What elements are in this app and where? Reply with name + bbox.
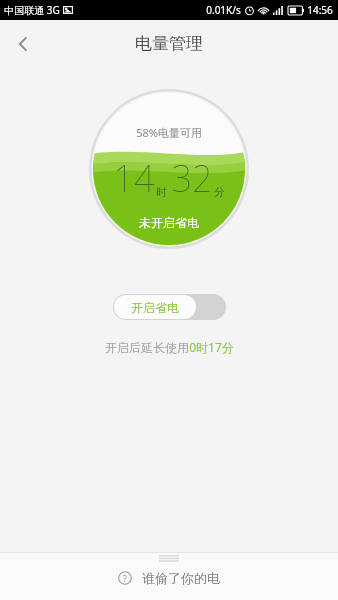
staticText: 开启省电 [131,300,179,315]
staticText: 14 [113,154,155,203]
button[interactable]: Back [0,21,46,67]
staticText: 0.01K/s [206,3,241,17]
staticText: ? [123,572,127,584]
button[interactable]: 开启省电 [113,294,226,320]
staticText: 32 [171,154,213,203]
staticText: 电量管理 [135,33,203,54]
staticText: 0时17分 [189,339,234,355]
staticText: 未开启省电 [139,215,199,230]
staticText: 14:56 [307,3,333,17]
staticText: 58%电量可用 [136,125,202,140]
staticText: 谁偷了你的电 [142,570,220,586]
staticText: 时 [156,185,167,199]
staticText: 中国联通 3G [4,3,60,17]
staticText: 分 [214,185,225,199]
staticText: 开启后延长使用 [105,340,189,355]
button[interactable]: ? [0,565,338,591]
